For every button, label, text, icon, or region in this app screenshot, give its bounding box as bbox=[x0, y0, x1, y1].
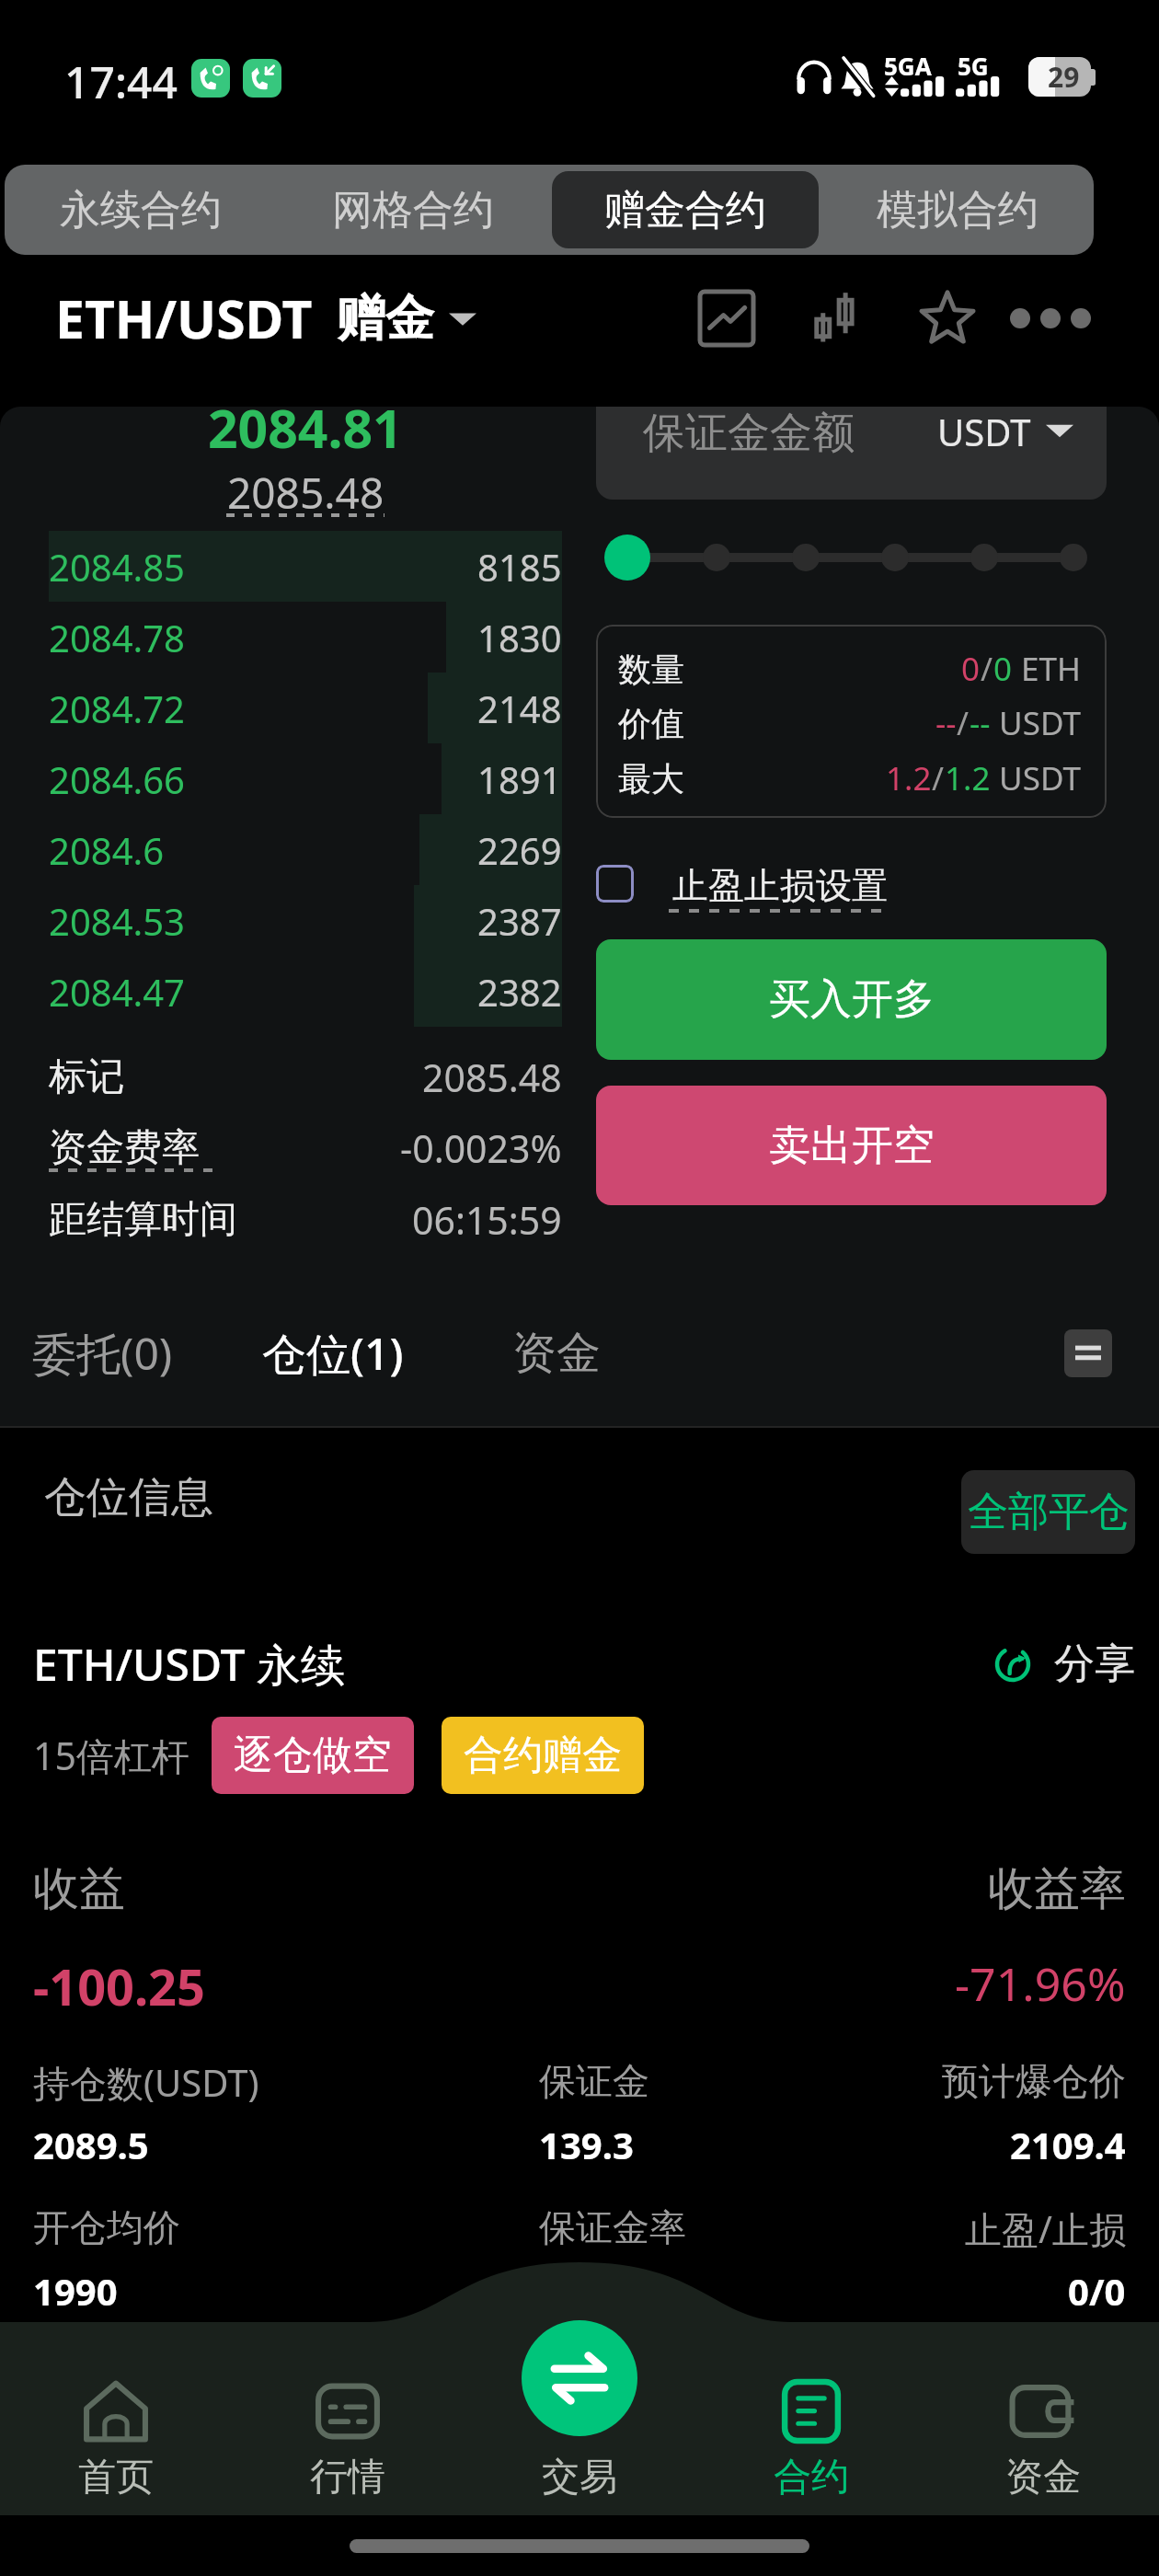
staticText: 止盈止损设置 bbox=[672, 863, 888, 908]
button[interactable]: 网格合约 bbox=[280, 171, 546, 248]
button[interactable]: 止盈止损设置 bbox=[596, 857, 1107, 913]
button[interactable]: ETH/USDT bbox=[55, 282, 476, 354]
staticText: -100.25 bbox=[33, 1952, 205, 2015]
staticText: 收益 bbox=[33, 1860, 125, 1915]
staticText: 0/0 bbox=[1068, 2266, 1126, 2314]
button[interactable]: Trade bbox=[522, 2320, 637, 2436]
button[interactable]: Filter bbox=[1064, 1329, 1112, 1377]
staticText: 2387 bbox=[477, 896, 562, 946]
staticText: -- bbox=[935, 701, 957, 745]
button[interactable]: 2084.47 bbox=[49, 956, 562, 1027]
button[interactable]: 保证金金额 bbox=[596, 407, 1107, 500]
button[interactable]: 2084.66 bbox=[49, 743, 562, 814]
staticText: 仓位(1) bbox=[262, 1323, 404, 1384]
staticText: 2084.81 bbox=[208, 407, 403, 451]
staticText: USDT bbox=[991, 701, 1081, 745]
staticText: 行情 bbox=[310, 2454, 385, 2501]
staticText: 5GA bbox=[884, 50, 932, 77]
button[interactable]: 2084.78 bbox=[49, 602, 562, 673]
staticText: 模拟合约 bbox=[877, 185, 1039, 236]
staticText: / bbox=[932, 756, 945, 800]
staticText: / bbox=[981, 647, 993, 691]
button[interactable]: 资金 bbox=[505, 1307, 608, 1399]
button[interactable]: 赠金合约 bbox=[552, 171, 819, 248]
staticText: USDT bbox=[937, 407, 1031, 454]
staticText: 2148 bbox=[477, 684, 562, 733]
staticText: 29 bbox=[1048, 58, 1080, 96]
staticText: 139.3 bbox=[539, 2120, 634, 2168]
button[interactable]: 全部平仓 bbox=[961, 1470, 1135, 1554]
staticText: 1830 bbox=[477, 613, 562, 662]
button[interactable]: 委托(0) bbox=[25, 1307, 180, 1399]
staticText: 2084.47 bbox=[49, 967, 185, 1017]
staticText: 1.2 bbox=[945, 756, 991, 800]
button[interactable]: 合约 bbox=[695, 2322, 927, 2515]
button[interactable]: 卖出开空 bbox=[596, 1086, 1107, 1205]
button[interactable]: 永续合约 bbox=[7, 171, 274, 248]
button[interactable]: 资金 bbox=[927, 2322, 1159, 2515]
staticText: 全部平仓 bbox=[968, 1487, 1130, 1537]
staticText: 保证金金额 bbox=[643, 407, 855, 454]
button[interactable]: 分享 bbox=[993, 1634, 1135, 1693]
staticText: 2269 bbox=[477, 825, 562, 875]
staticText: ETH/USDT bbox=[55, 282, 313, 354]
staticText: 5G bbox=[958, 50, 989, 77]
staticText: 2089.5 bbox=[33, 2120, 149, 2168]
staticText: 2084.66 bbox=[49, 754, 185, 804]
button[interactable]: 2084.72 bbox=[49, 673, 562, 743]
staticText: 2084.53 bbox=[49, 896, 185, 946]
button[interactable]: Candlestick chart bbox=[801, 276, 875, 361]
staticText: 最大 bbox=[618, 758, 684, 799]
staticText: 17:44 bbox=[64, 52, 178, 103]
staticText: 买入开多 bbox=[769, 973, 935, 1026]
staticText: 2084.72 bbox=[49, 684, 185, 733]
staticText: 合约 bbox=[774, 2454, 849, 2501]
button[interactable]: 首页 bbox=[0, 2322, 232, 2515]
staticText: 资金 bbox=[512, 1326, 601, 1381]
staticText: / bbox=[957, 701, 970, 745]
staticText: USDT bbox=[991, 756, 1081, 800]
staticText: 数量 bbox=[618, 649, 684, 690]
staticText: 止盈/止损 bbox=[965, 2203, 1126, 2251]
button[interactable]: 买入开多 bbox=[596, 939, 1107, 1060]
staticText: 持仓数(USDT) bbox=[33, 2057, 259, 2105]
staticText: 赠金 bbox=[337, 288, 434, 350]
staticText: 仓位信息 bbox=[44, 1471, 213, 1524]
staticText: 开仓均价 bbox=[33, 2204, 180, 2250]
button[interactable]: 2084.53 bbox=[49, 885, 562, 956]
button[interactable]: Favorite bbox=[911, 276, 984, 361]
staticText: 06:15:59 bbox=[412, 1194, 562, 1246]
staticText: 2084.85 bbox=[49, 542, 185, 592]
staticText: 1891 bbox=[477, 754, 562, 804]
staticText: 1.2 bbox=[886, 756, 932, 800]
staticText: 网格合约 bbox=[332, 185, 494, 236]
staticText: 0 bbox=[993, 647, 1013, 691]
staticText: 合约赠金 bbox=[464, 1731, 622, 1780]
staticText: 1990 bbox=[33, 2266, 118, 2314]
staticText: 15倍杠杆 bbox=[33, 1730, 189, 1781]
button[interactable]: More options bbox=[1014, 276, 1087, 361]
button[interactable]: 2084.85 bbox=[49, 531, 562, 602]
button[interactable]: Line chart bbox=[690, 276, 763, 361]
staticText: 赠金合约 bbox=[604, 185, 766, 236]
staticText: -71.96% bbox=[955, 1952, 1126, 2015]
button[interactable]: 模拟合约 bbox=[824, 171, 1091, 248]
button[interactable]: 2084.6 bbox=[49, 814, 562, 885]
button[interactable]: 仓位(1) bbox=[255, 1307, 411, 1399]
button[interactable]: 交易 bbox=[464, 2450, 695, 2505]
staticText: 逐仓做空 bbox=[234, 1731, 392, 1780]
button[interactable]: 行情 bbox=[232, 2322, 464, 2515]
staticText: 分享 bbox=[1054, 1639, 1135, 1689]
staticText: ETH/USDT 永续 bbox=[33, 1634, 346, 1693]
staticText: 卖出开空 bbox=[769, 1120, 935, 1172]
staticText: 保证金率 bbox=[539, 2204, 686, 2250]
staticText: 2085.48 bbox=[227, 464, 384, 515]
staticText: 2084.78 bbox=[49, 613, 185, 662]
staticText: 永续合约 bbox=[60, 185, 222, 236]
staticText: 委托(0) bbox=[32, 1323, 173, 1384]
staticText: -0.0023% bbox=[400, 1122, 562, 1174]
staticText: 标记 bbox=[49, 1053, 124, 1101]
staticText: 2084.6 bbox=[49, 825, 165, 875]
staticText: 资金费率 bbox=[49, 1124, 200, 1172]
staticText: 首页 bbox=[78, 2454, 154, 2501]
